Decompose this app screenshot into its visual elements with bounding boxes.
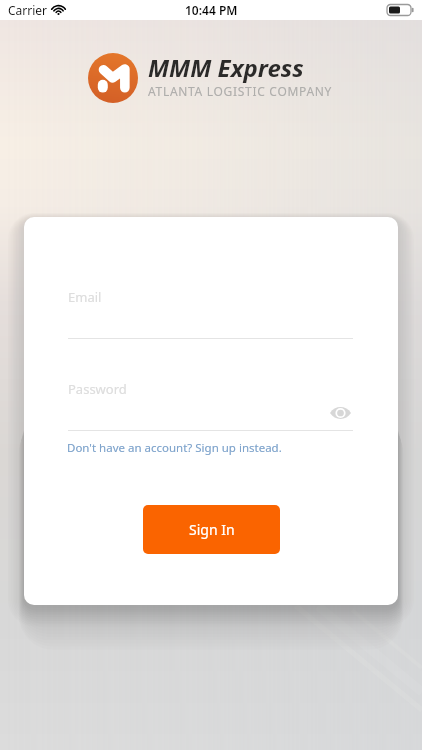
button[interactable]: Show password xyxy=(327,400,353,426)
staticText: Sign In xyxy=(189,520,235,539)
staticText: MMM Express xyxy=(148,51,304,84)
staticText: ATLANTA LOGISTIC COMPANY xyxy=(148,83,333,99)
staticText: Email xyxy=(68,288,102,306)
staticText: 10:44 PM xyxy=(185,2,238,18)
staticText: Don't have an account? Sign up instead. xyxy=(67,440,282,456)
staticText: Carrier xyxy=(8,2,48,18)
staticText: Password xyxy=(68,380,127,398)
button[interactable]: Sign In xyxy=(143,505,280,554)
button[interactable]: Don't have an account? Sign up instead. xyxy=(67,440,282,456)
